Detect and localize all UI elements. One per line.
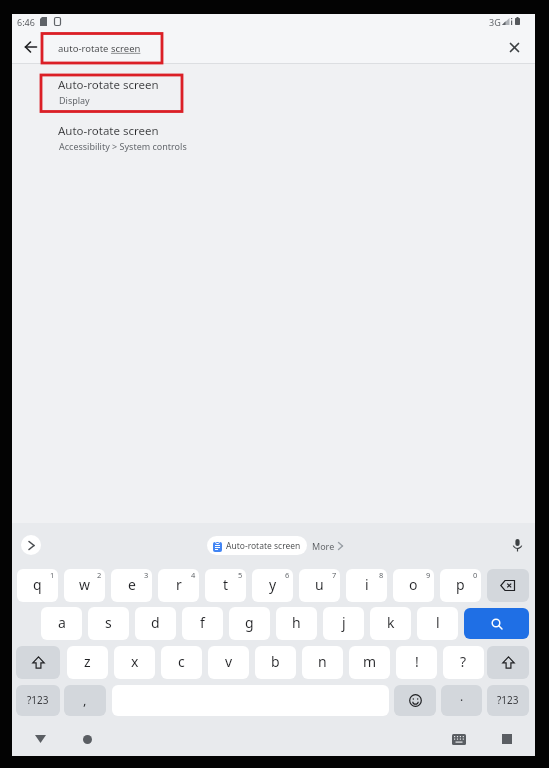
- button[interactable]: i: [346, 569, 387, 602]
- button[interactable]: t: [205, 569, 246, 602]
- button[interactable]: o: [393, 569, 434, 602]
- staticText: Accessibility > System controls: [59, 140, 187, 152]
- staticText: 6:46: [17, 16, 35, 28]
- staticText: 3G: [489, 16, 501, 28]
- staticText: j: [342, 613, 346, 632]
- staticText: n: [318, 652, 327, 671]
- staticText: o: [409, 575, 418, 594]
- button[interactable]: g: [229, 607, 270, 640]
- staticText: u: [315, 575, 324, 594]
- button[interactable]: j: [323, 607, 364, 640]
- staticText: i: [365, 575, 369, 594]
- staticText: g: [245, 613, 254, 632]
- button[interactable]: [503, 36, 525, 58]
- staticText: a: [58, 613, 66, 632]
- staticText: k: [387, 613, 395, 632]
- button[interactable]: [487, 569, 529, 602]
- staticText: z: [84, 652, 91, 671]
- staticText: 9: [426, 570, 431, 580]
- button[interactable]: [77, 729, 97, 749]
- button[interactable]: ,: [64, 685, 106, 716]
- button[interactable]: f: [182, 607, 223, 640]
- staticText: h: [292, 613, 301, 632]
- staticText: ?123: [497, 693, 519, 707]
- staticText: w: [79, 575, 91, 594]
- staticText: f: [200, 613, 205, 632]
- staticText: auto-rotate screen: [58, 42, 141, 55]
- button[interactable]: [449, 729, 469, 749]
- staticText: b: [271, 652, 280, 671]
- staticText: y: [269, 575, 277, 594]
- staticText: v: [225, 652, 233, 671]
- button[interactable]: d: [135, 607, 176, 640]
- button[interactable]: Auto-rotate screen: [207, 536, 307, 555]
- staticText: !: [415, 652, 419, 671]
- staticText: Display: [59, 94, 90, 106]
- button[interactable]: e: [111, 569, 152, 602]
- staticText: 6: [285, 570, 290, 580]
- button[interactable]: h: [276, 607, 317, 640]
- staticText: q: [33, 575, 42, 594]
- staticText: t: [223, 575, 229, 594]
- button[interactable]: ·: [441, 685, 482, 716]
- staticText: ·: [460, 692, 464, 708]
- staticText: 7: [332, 570, 337, 580]
- button[interactable]: ?123: [16, 685, 60, 716]
- staticText: 2: [97, 570, 102, 580]
- staticText: m: [363, 652, 377, 671]
- button[interactable]: w: [64, 569, 105, 602]
- button[interactable]: !: [396, 646, 437, 679]
- button[interactable]: [507, 535, 527, 555]
- staticText: 5: [238, 570, 243, 580]
- button[interactable]: m: [349, 646, 390, 679]
- button[interactable]: q: [17, 569, 58, 602]
- button[interactable]: [497, 729, 517, 749]
- button[interactable]: p: [440, 569, 481, 602]
- button[interactable]: u: [299, 569, 340, 602]
- button[interactable]: z: [67, 646, 108, 679]
- staticText: Auto-rotate screen: [58, 123, 159, 139]
- button[interactable]: [30, 729, 50, 749]
- button[interactable]: [487, 646, 529, 679]
- staticText: Auto-rotate screen: [226, 540, 301, 552]
- staticText: ?: [460, 652, 467, 671]
- button[interactable]: a: [41, 607, 82, 640]
- button[interactable]: [16, 646, 60, 679]
- staticText: 0: [473, 570, 478, 580]
- staticText: c: [178, 652, 185, 671]
- staticText: p: [456, 575, 465, 594]
- staticText: e: [128, 575, 136, 594]
- staticText: r: [176, 575, 182, 594]
- button[interactable]: b: [255, 646, 296, 679]
- button[interactable]: n: [302, 646, 343, 679]
- button[interactable]: x: [114, 646, 155, 679]
- staticText: d: [151, 613, 160, 632]
- staticText: l: [436, 613, 440, 632]
- button[interactable]: l: [417, 607, 458, 640]
- button[interactable]: More: [312, 536, 343, 555]
- staticText: s: [105, 613, 112, 632]
- button[interactable]: k: [370, 607, 411, 640]
- button[interactable]: Auto-rotate screen: [42, 76, 342, 112]
- button[interactable]: [394, 685, 436, 716]
- button[interactable]: v: [208, 646, 249, 679]
- staticText: 1: [50, 570, 55, 580]
- button[interactable]: ?: [443, 646, 484, 679]
- button[interactable]: ?123: [487, 685, 529, 716]
- button[interactable]: c: [161, 646, 202, 679]
- button[interactable]: [464, 608, 529, 639]
- staticText: 3: [144, 570, 149, 580]
- button[interactable]: [20, 36, 42, 58]
- button[interactable]: s: [88, 607, 129, 640]
- staticText: 8: [379, 570, 384, 580]
- staticText: x: [131, 652, 139, 671]
- staticText: ?123: [27, 693, 49, 707]
- staticText: ,: [83, 691, 87, 709]
- button[interactable]: y: [252, 569, 293, 602]
- staticText: Auto-rotate screen: [58, 77, 159, 93]
- button[interactable]: Auto-rotate screen: [42, 122, 342, 158]
- staticText: 4: [191, 570, 196, 580]
- button[interactable]: [21, 535, 41, 555]
- button[interactable]: r: [158, 569, 199, 602]
